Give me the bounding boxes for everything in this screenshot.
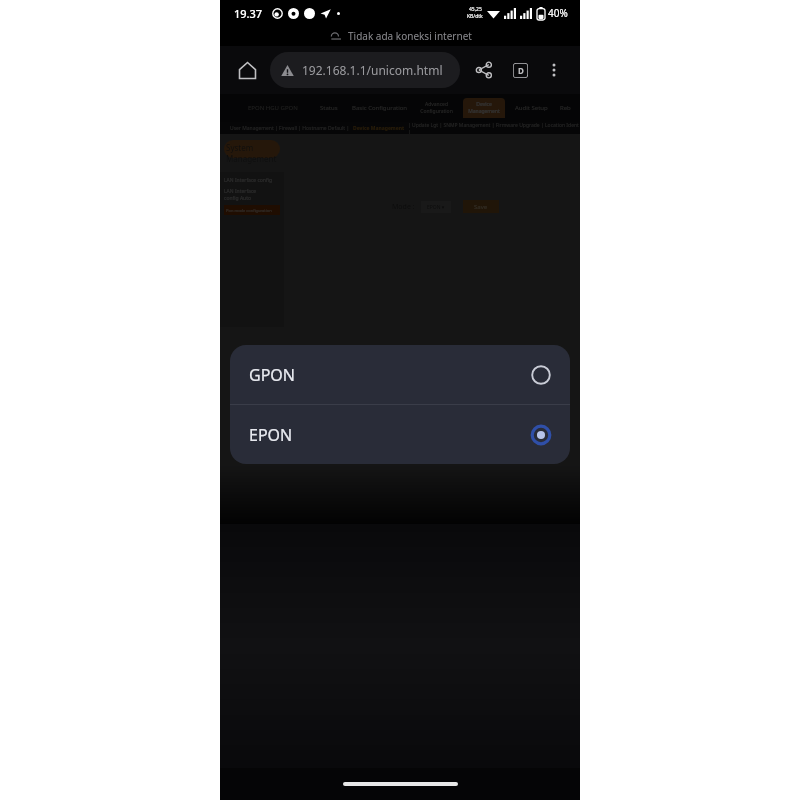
staticText: | Update Lgt | SNMP Management | Firmwar… bbox=[408, 122, 580, 134]
staticText: Reb bbox=[560, 104, 571, 112]
staticText: KB/dtk bbox=[467, 13, 483, 20]
staticText: LAN Interface config bbox=[224, 177, 273, 184]
staticText: Pon mode configuration bbox=[224, 208, 272, 213]
staticText: EPON HGU GPON bbox=[248, 104, 298, 112]
staticText: EPON bbox=[249, 424, 293, 446]
staticText: System Management bbox=[226, 142, 277, 164]
staticText: 40% bbox=[548, 6, 568, 20]
staticText: D bbox=[518, 65, 524, 76]
staticText: GPON bbox=[249, 364, 295, 386]
staticText: 45,25 bbox=[469, 6, 482, 13]
button[interactable]: More options bbox=[538, 54, 570, 86]
button[interactable]: Home bbox=[230, 53, 264, 87]
staticText: Audit Setup bbox=[515, 104, 548, 112]
button[interactable]: GPON bbox=[230, 345, 570, 404]
staticText: Save bbox=[474, 203, 488, 211]
staticText: Basic Configuration bbox=[352, 104, 408, 112]
staticText: LAN Interface config Auto bbox=[224, 188, 257, 202]
staticText: 192.168.1.1/unicom.html bbox=[302, 62, 443, 78]
staticText: Device Management bbox=[353, 125, 405, 132]
staticText: Advanced Configuration bbox=[420, 101, 453, 115]
staticText: Device Management bbox=[468, 101, 500, 115]
staticText: Status bbox=[320, 104, 338, 112]
staticText: EPON ▾ bbox=[427, 204, 445, 211]
staticText: Tidak ada koneksi internet bbox=[348, 29, 472, 43]
button[interactable]: Tabs bbox=[504, 54, 536, 86]
button[interactable]: EPON bbox=[230, 405, 570, 464]
staticText: User Management | Firewall | Hostname De… bbox=[230, 125, 350, 132]
button[interactable]: 192.168.1.1/unicom.html bbox=[270, 52, 460, 88]
button[interactable]: Save bbox=[463, 200, 499, 213]
button[interactable]: Share bbox=[468, 54, 500, 86]
staticText: 19.37 bbox=[234, 6, 263, 21]
